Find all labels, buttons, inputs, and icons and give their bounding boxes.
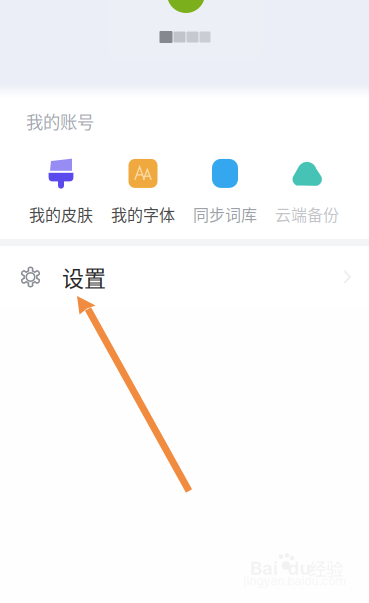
staticText: 我的皮肤 bbox=[29, 202, 93, 226]
button[interactable]: 我的皮肤 bbox=[20, 155, 102, 227]
staticText: 我的字体 bbox=[111, 202, 175, 226]
staticText: 同步词库 bbox=[193, 202, 257, 226]
staticText: 经验 bbox=[309, 555, 343, 581]
button[interactable]: 我的字体 bbox=[102, 155, 184, 227]
staticText: 设置 bbox=[62, 261, 106, 293]
button[interactable]: 设置 bbox=[0, 248, 369, 306]
staticText: Bai bbox=[250, 557, 278, 579]
button[interactable]: 同步词库 bbox=[184, 155, 266, 227]
staticText: du bbox=[287, 557, 310, 579]
button[interactable]: 云端备份 bbox=[266, 155, 348, 227]
staticText: 我的账号 bbox=[26, 108, 94, 134]
staticText: 云端备份 bbox=[275, 202, 339, 226]
